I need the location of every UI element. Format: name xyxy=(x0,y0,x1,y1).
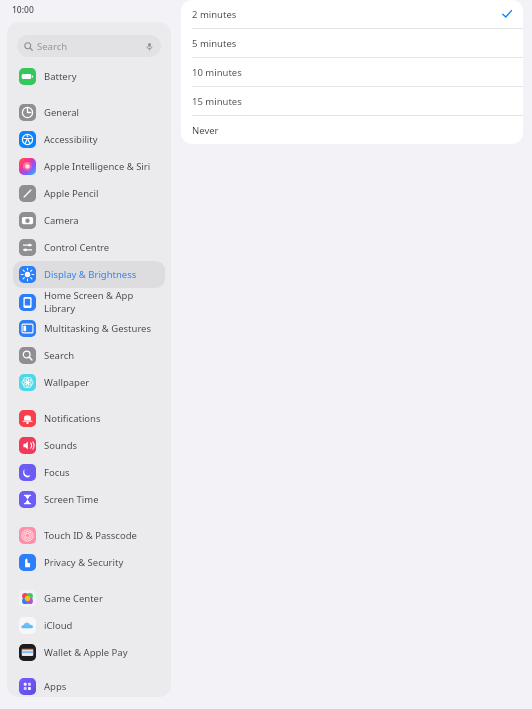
staticText: Multitasking & Gestures xyxy=(44,322,152,335)
button[interactable]: Display & Brightness xyxy=(13,261,165,288)
staticText: Wallet & Apple Pay xyxy=(44,646,128,659)
button[interactable]: Apps xyxy=(13,675,165,697)
staticText: 5 minutes xyxy=(192,37,237,50)
other: Selected xyxy=(502,9,512,19)
staticText: Privacy & Security xyxy=(44,556,124,569)
button[interactable]: 2 minutes xyxy=(181,0,523,28)
staticText: Apple Intelligence & Siri xyxy=(44,160,151,173)
button[interactable]: Multitasking & Gestures xyxy=(13,315,165,342)
staticText: Home Screen & App Library xyxy=(44,289,159,315)
staticText: Wallpaper xyxy=(44,376,90,389)
button[interactable]: Control Centre xyxy=(13,234,165,261)
button[interactable]: Accessibility xyxy=(13,126,165,153)
button[interactable]: Wallpaper xyxy=(13,369,165,396)
staticText: iCloud xyxy=(44,619,73,632)
button[interactable]: Home Screen & App Library xyxy=(13,288,165,315)
staticText: Never xyxy=(192,124,219,137)
button[interactable]: Search xyxy=(13,342,165,369)
button[interactable]: 5 minutes xyxy=(181,29,523,57)
button[interactable]: 15 minutes xyxy=(181,87,523,115)
button[interactable]: Game Center xyxy=(13,585,165,612)
staticText: Search xyxy=(44,349,75,362)
staticText: Game Center xyxy=(44,592,103,605)
staticText: 10:00 xyxy=(12,4,34,16)
button[interactable]: Camera xyxy=(13,207,165,234)
button[interactable]: Back xyxy=(182,15,207,40)
button[interactable]: Wallet & Apple Pay xyxy=(13,639,165,666)
button[interactable]: Privacy & Security xyxy=(13,549,165,576)
button[interactable]: Screen Time xyxy=(13,486,165,513)
staticText: Auto-Lock xyxy=(321,20,375,35)
staticText: Notifications xyxy=(44,412,101,425)
staticText: 2 minutes xyxy=(192,8,237,21)
staticText: 10 minutes xyxy=(192,66,242,79)
staticText: Control Centre xyxy=(44,241,110,254)
button[interactable]: Sounds xyxy=(13,432,165,459)
button[interactable]: 10 minutes xyxy=(181,58,523,86)
button[interactable]: Notifications xyxy=(13,405,165,432)
button[interactable]: Battery xyxy=(13,63,165,90)
staticText: Apps xyxy=(44,680,67,693)
button[interactable]: Touch ID & Passcode xyxy=(13,522,165,549)
staticText: Search xyxy=(37,40,68,53)
button[interactable]: General xyxy=(13,99,165,126)
staticText: 5G xyxy=(494,5,504,15)
button[interactable]: Search xyxy=(17,35,161,57)
staticText: Camera xyxy=(44,214,79,227)
staticText: Sounds xyxy=(44,439,78,452)
staticText: Display & Brightness xyxy=(44,268,137,281)
staticText: Apple Pencil xyxy=(44,187,99,200)
button[interactable]: Focus xyxy=(13,459,165,486)
staticText: Screen Time xyxy=(44,493,99,506)
button[interactable]: Apple Intelligence & Siri xyxy=(13,153,165,180)
staticText: General xyxy=(44,106,80,119)
button[interactable]: Never xyxy=(181,116,523,144)
staticText: Touch ID & Passcode xyxy=(44,529,137,542)
staticText: 15 minutes xyxy=(192,95,242,108)
staticText: Battery xyxy=(44,70,77,83)
button[interactable]: Apple Pencil xyxy=(13,180,165,207)
staticText: Accessibility xyxy=(44,133,98,146)
button[interactable]: iCloud xyxy=(13,612,165,639)
staticText: Focus xyxy=(44,466,70,479)
